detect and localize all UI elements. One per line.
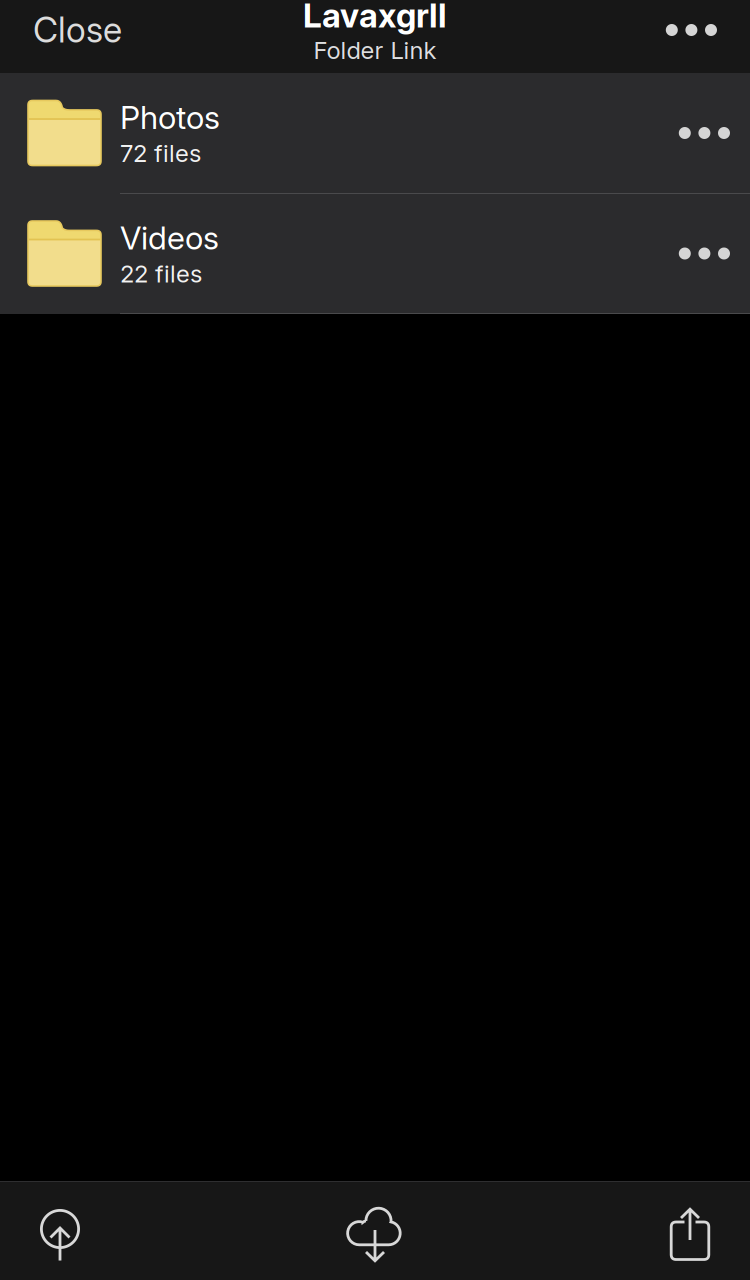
- button[interactable]: Videos: [0, 194, 750, 313]
- button[interactable]: Share: [630, 1190, 750, 1280]
- button[interactable]: More options: [642, 0, 750, 60]
- staticText: Folder Link: [313, 36, 436, 65]
- staticText: 22 files: [120, 259, 202, 288]
- button[interactable]: Photos: [0, 73, 750, 193]
- staticText: 72 files: [120, 139, 201, 168]
- staticText: Videos: [120, 219, 219, 257]
- staticText: Lavaxgrll: [303, 0, 447, 36]
- staticText: Photos: [120, 98, 220, 137]
- button[interactable]: Close: [0, 0, 144, 60]
- button[interactable]: Upload: [0, 1190, 120, 1280]
- staticText: Close: [33, 9, 122, 51]
- button[interactable]: Download: [315, 1190, 435, 1280]
